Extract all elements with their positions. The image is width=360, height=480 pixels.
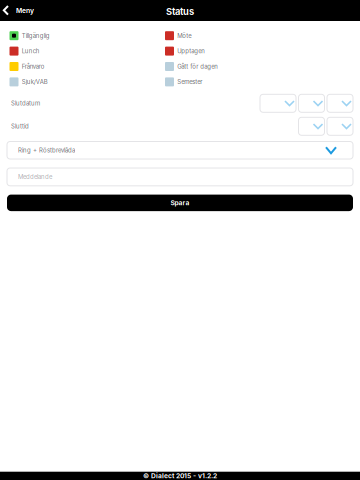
button[interactable]: Välj [298, 94, 324, 112]
staticText: Status [166, 6, 194, 17]
staticText: Slutdatum [11, 100, 40, 107]
button[interactable]: Frånvaro [9, 59, 165, 74]
button[interactable]: Gått för dagen [165, 59, 262, 74]
button[interactable]: Välj [327, 117, 353, 135]
staticText: Upptagen [177, 47, 205, 55]
staticText: Frånvaro [22, 63, 45, 70]
button[interactable]: Meny [0, 0, 34, 21]
button[interactable]: Välj [327, 94, 353, 112]
button[interactable]: Meddelande [7, 168, 353, 186]
staticText: © Dialect 2015 - v1.2.2 [143, 472, 217, 480]
staticText: Tillgänglig [22, 32, 50, 39]
button[interactable]: Upptagen [165, 43, 262, 59]
staticText: Meny [16, 6, 34, 15]
button[interactable]: Tillgänglig [9, 28, 165, 43]
button[interactable]: Sjuk/VAB [9, 74, 165, 90]
button[interactable]: Välj [260, 94, 296, 112]
staticText: Semester [177, 78, 202, 86]
button[interactable]: Lunch [9, 43, 165, 59]
staticText: Sjuk/VAB [22, 78, 48, 86]
staticText: Möte [177, 32, 191, 39]
staticText: Meddelande [18, 173, 52, 181]
staticText: Lunch [22, 47, 40, 55]
button[interactable]: Ring + Röstbrevlåda [7, 141, 353, 159]
staticText: Ring + Röstbrevlåda [18, 147, 75, 154]
button[interactable]: Möte [165, 28, 262, 43]
staticText: Spara [170, 199, 189, 207]
staticText: Gått för dagen [177, 63, 218, 70]
button[interactable]: Spara [7, 195, 353, 211]
staticText: Sluttid [11, 123, 29, 130]
button[interactable]: Välj [298, 117, 324, 135]
button[interactable]: Semester [165, 74, 262, 90]
